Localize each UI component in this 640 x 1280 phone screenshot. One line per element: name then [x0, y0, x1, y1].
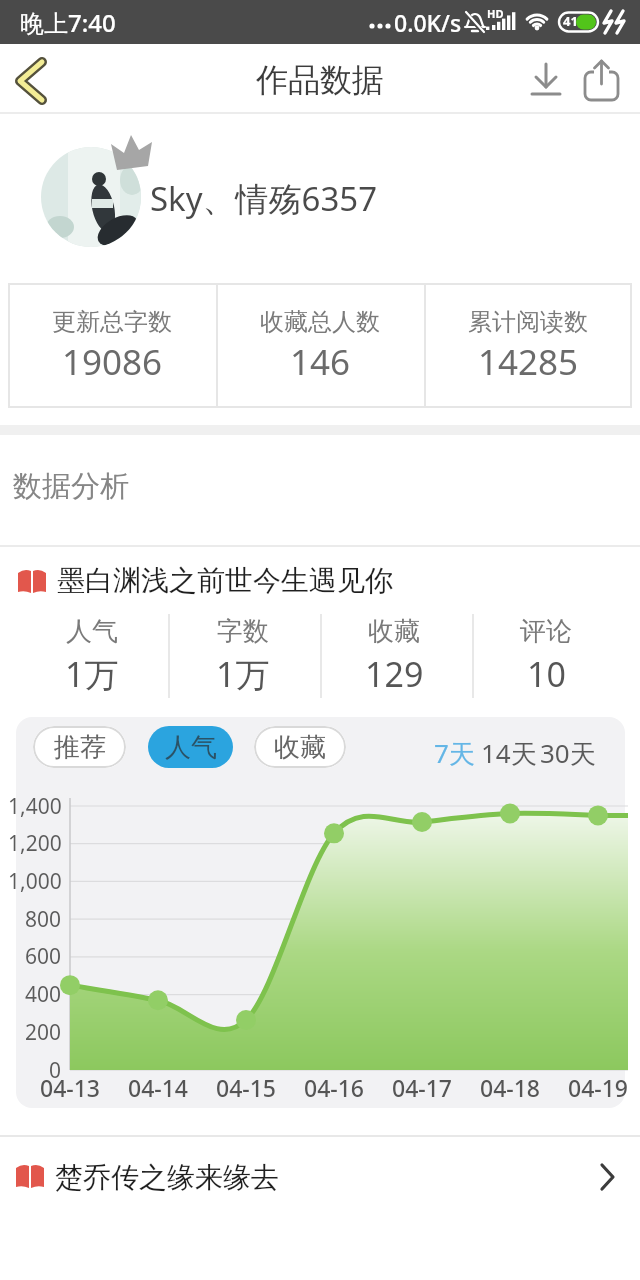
staticText: 累计阅读数	[468, 307, 588, 337]
button[interactable]	[0, 1150, 640, 1206]
button[interactable]	[430, 733, 478, 773]
staticText: 04-13	[40, 1072, 101, 1103]
staticText: 04-18	[480, 1072, 541, 1103]
staticText: 0.0K/s	[394, 7, 462, 38]
button[interactable]: 人气	[148, 726, 233, 768]
staticText: 04-16	[304, 1072, 365, 1103]
staticText: 400	[25, 980, 62, 1009]
staticText: 墨白渊浅之前世今生遇见你	[57, 563, 393, 598]
staticText: 129	[365, 651, 424, 697]
button[interactable]	[0, 552, 640, 608]
staticText: 收藏	[368, 615, 420, 648]
button[interactable]	[580, 54, 624, 104]
staticText: 1,200	[8, 829, 62, 858]
button[interactable]	[526, 56, 568, 104]
button[interactable]	[542, 733, 594, 773]
staticText: 更新总字数	[52, 307, 172, 337]
staticText: 146	[290, 338, 351, 386]
staticText: 14285	[478, 338, 579, 386]
staticText: 评论	[520, 615, 572, 648]
button[interactable]: 收藏	[254, 726, 346, 768]
staticText: 04-15	[216, 1072, 277, 1103]
staticText: 数据分析	[13, 468, 129, 505]
staticText: 800	[25, 905, 62, 934]
button[interactable]	[16, 128, 616, 264]
staticText: 1,400	[8, 792, 62, 821]
staticText: 04-17	[392, 1072, 453, 1103]
staticText: Sky、情殇6357	[150, 176, 378, 221]
staticText: 推荐	[54, 731, 106, 764]
staticText: 19086	[62, 338, 163, 386]
staticText: 人气	[66, 615, 118, 648]
staticText: 600	[25, 942, 62, 971]
staticText: HD	[487, 6, 504, 21]
staticText: 人气	[165, 731, 217, 764]
staticText: 楚乔传之缘来缘去	[55, 1160, 279, 1195]
staticText: 1万	[65, 651, 119, 697]
staticText: 200	[25, 1018, 62, 1047]
staticText: 41	[563, 12, 578, 30]
staticText: 04-19	[568, 1072, 629, 1103]
staticText: 7天	[434, 735, 475, 771]
staticText: 1万	[216, 651, 270, 697]
staticText: 0	[49, 1056, 62, 1085]
button[interactable]: 推荐	[33, 726, 126, 768]
staticText: 30天	[540, 735, 596, 771]
staticText: 晚上7:40	[20, 6, 116, 39]
staticText: 字数	[217, 615, 269, 648]
staticText: 作品数据	[256, 60, 384, 100]
staticText: 14天	[481, 735, 537, 771]
staticText: 收藏总人数	[260, 307, 380, 337]
button[interactable]	[6, 52, 62, 110]
staticText: 10	[527, 651, 566, 697]
staticText: 1,000	[8, 867, 62, 896]
button[interactable]	[484, 733, 536, 773]
staticText: 04-14	[128, 1072, 189, 1103]
staticText: 收藏	[274, 731, 326, 764]
